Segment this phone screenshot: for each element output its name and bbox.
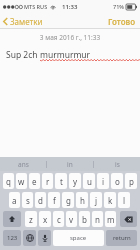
staticText: in	[67, 160, 73, 169]
staticText: return	[113, 234, 131, 242]
staticText: n	[95, 214, 100, 225]
button[interactable]: Заметки	[0, 14, 47, 29]
button[interactable]: k	[104, 192, 116, 208]
button[interactable]: v	[66, 211, 77, 227]
button[interactable]: Change keyboard language	[23, 230, 36, 246]
button[interactable]: Готово	[104, 14, 140, 29]
button[interactable]: z	[25, 211, 37, 227]
button[interactable]: y	[69, 173, 81, 189]
staticText: q	[6, 176, 11, 187]
staticText: w	[18, 176, 25, 187]
staticText: p	[129, 176, 134, 187]
button[interactable]: n	[92, 211, 103, 227]
staticText: k	[108, 195, 113, 206]
button[interactable]: 123	[3, 230, 21, 246]
button[interactable]: h	[76, 192, 88, 208]
staticText: v	[69, 214, 74, 225]
staticText: c	[57, 214, 61, 225]
staticText: d	[38, 195, 43, 206]
staticText: l	[123, 195, 126, 206]
button[interactable]: ans	[0, 157, 46, 171]
staticText: 11:33	[62, 3, 78, 11]
staticText: z	[29, 214, 33, 225]
staticText: ans	[18, 160, 29, 169]
button[interactable]: l	[118, 192, 130, 208]
button[interactable]: a	[9, 192, 20, 208]
staticText: 3 мая 2016 г., 11:33	[0, 33, 140, 42]
button[interactable]: e	[29, 173, 40, 189]
button[interactable]: r	[42, 173, 53, 189]
staticText: 123	[7, 234, 18, 242]
button[interactable]: is	[94, 157, 140, 171]
button[interactable]: f	[48, 192, 60, 208]
staticText: e	[32, 176, 37, 187]
staticText: Sup 2ch	[6, 49, 40, 61]
staticText: o	[115, 176, 120, 187]
button[interactable]: s	[22, 192, 33, 208]
button[interactable]: i	[97, 173, 109, 189]
staticText: x	[43, 214, 48, 225]
button[interactable]: j	[90, 192, 102, 208]
staticText: s	[26, 195, 30, 206]
button[interactable]: return	[106, 230, 137, 246]
button[interactable]: b	[79, 211, 90, 227]
button[interactable]: Shift	[3, 211, 21, 227]
button[interactable]: w	[16, 173, 27, 189]
staticText: Заметки	[10, 16, 43, 27]
staticText: MTS RUS	[24, 3, 48, 10]
button[interactable]: c	[53, 211, 64, 227]
staticText: j	[95, 195, 98, 206]
button[interactable]: o	[111, 173, 123, 189]
button[interactable]: g	[62, 192, 74, 208]
staticText: space	[70, 234, 87, 242]
staticText: 71%	[113, 3, 124, 10]
staticText: t	[60, 176, 63, 187]
staticText: a	[12, 195, 17, 206]
button[interactable]: Dictate	[38, 230, 51, 246]
staticText: is	[115, 160, 120, 169]
button[interactable]: in	[47, 157, 93, 171]
staticText: m	[107, 214, 115, 225]
staticText: r	[46, 176, 50, 187]
button[interactable]: u	[83, 173, 95, 189]
button[interactable]: space	[53, 230, 104, 246]
staticText: h	[80, 195, 85, 206]
staticText: i	[102, 176, 105, 187]
staticText: u	[87, 176, 92, 187]
button[interactable]: q	[3, 173, 14, 189]
staticText: y	[73, 176, 78, 187]
button[interactable]: p	[125, 173, 137, 189]
staticText: Готово	[108, 16, 136, 27]
staticText: murmurmur	[40, 49, 91, 61]
staticText: b	[82, 214, 87, 225]
button[interactable]: d	[35, 192, 46, 208]
button[interactable]: t	[55, 173, 67, 189]
button[interactable]: Backspace	[120, 211, 137, 227]
staticText: f	[53, 195, 56, 206]
staticText: g	[66, 195, 71, 206]
button[interactable]: m	[105, 211, 116, 227]
button[interactable]: x	[39, 211, 51, 227]
